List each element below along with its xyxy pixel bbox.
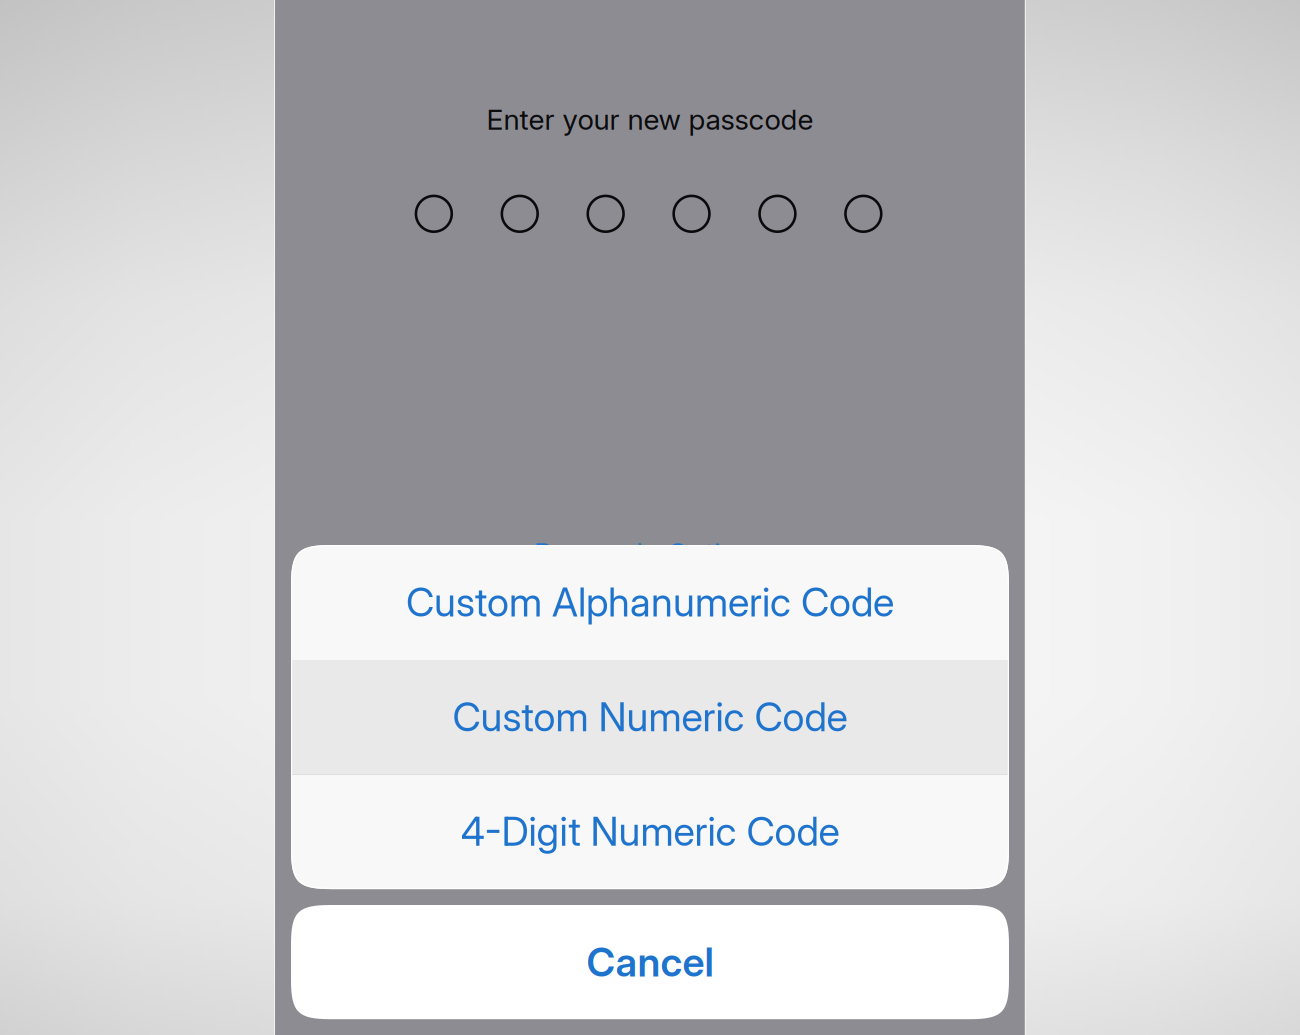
staticText: Custom Alphanumeric Code xyxy=(406,578,894,626)
button[interactable]: 4-Digit Numeric Code xyxy=(291,774,1009,889)
button[interactable]: Custom Numeric Code xyxy=(291,660,1009,774)
staticText: Custom Numeric Code xyxy=(452,693,847,741)
staticText: 4-Digit Numeric Code xyxy=(460,808,839,855)
staticText: Enter your new passcode xyxy=(486,102,813,136)
button[interactable]: Custom Alphanumeric Code xyxy=(291,545,1009,660)
staticText: Passcode Options xyxy=(534,536,766,570)
button[interactable]: Passcode Options xyxy=(534,536,766,570)
button[interactable]: Cancel xyxy=(291,905,1009,1019)
staticText: Cancel xyxy=(586,938,713,986)
